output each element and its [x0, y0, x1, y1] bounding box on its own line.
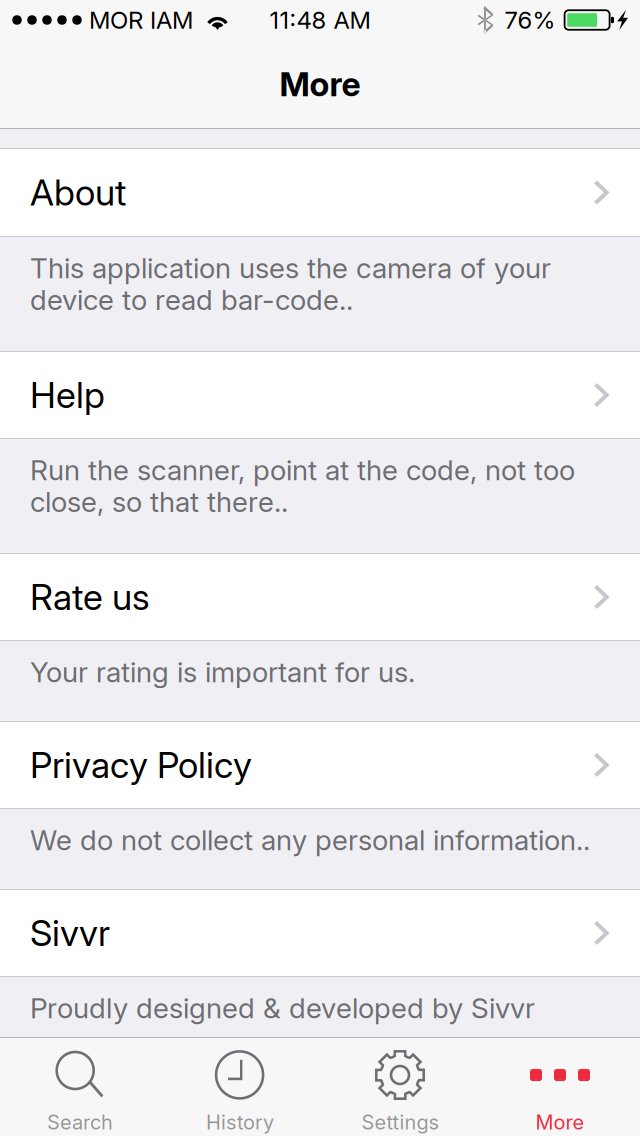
button[interactable]: Rate us: [0, 554, 640, 641]
staticText: Privacy Policy: [30, 743, 252, 787]
staticText: Run the scanner, point at the code, not …: [30, 453, 575, 519]
staticText: 76%: [505, 5, 556, 34]
staticText: Sivvr: [30, 911, 110, 955]
staticText: Help: [30, 373, 105, 417]
staticText: Search: [47, 1110, 113, 1134]
staticText: 11:48 AM: [269, 5, 370, 34]
button[interactable]: Sivvr: [0, 890, 640, 977]
button[interactable]: Privacy Policy: [0, 722, 640, 809]
staticText: This application uses the camera of your…: [30, 251, 551, 317]
staticText: We do not collect any personal informati…: [30, 823, 590, 857]
staticText: Proudly designed & developed by Sivvr: [30, 991, 535, 1025]
staticText: About: [30, 171, 126, 214]
button[interactable]: More: [480, 1038, 640, 1136]
button[interactable]: Search: [0, 1038, 160, 1136]
button[interactable]: Help: [0, 352, 640, 439]
staticText: Rate us: [30, 575, 150, 619]
staticText: More: [279, 64, 360, 104]
button[interactable]: Settings: [320, 1038, 480, 1136]
staticText: MOR IAM: [89, 5, 193, 34]
staticText: Your rating is important for us.: [30, 655, 415, 689]
staticText: Settings: [361, 1110, 438, 1134]
staticText: More: [535, 1110, 584, 1134]
staticText: History: [206, 1110, 274, 1134]
button[interactable]: History: [160, 1038, 320, 1136]
button[interactable]: About: [0, 149, 640, 237]
